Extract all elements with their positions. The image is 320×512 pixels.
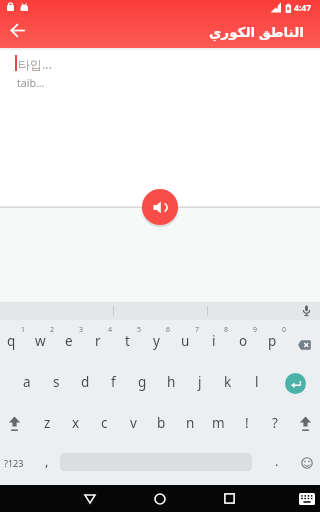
button[interactable]: a [13,369,41,395]
staticText: u [181,332,190,350]
staticText: i [212,332,216,350]
staticText: d [81,373,90,391]
staticText: k [224,373,232,391]
staticText: 1 [21,325,26,335]
staticText: 4:47 [294,2,312,14]
staticText: ?123 [4,457,24,469]
button[interactable]: b [147,410,175,436]
button[interactable]: g [128,369,156,395]
staticText: y [153,332,160,350]
button[interactable]: f [99,369,127,395]
button[interactable]: r [84,328,112,354]
button[interactable]: w [26,328,54,354]
staticText: t [125,332,130,350]
staticText: v [130,414,137,432]
button[interactable]: l [243,369,271,395]
staticText: 타입... [18,56,52,72]
staticText: l [255,373,259,391]
staticText: الناطق الكوري [209,23,304,41]
staticText: m [212,414,225,432]
button[interactable]: ? [261,410,289,436]
staticText: p [268,332,277,350]
staticText: 4 [108,325,113,335]
button[interactable] [217,487,241,510]
staticText: j [198,373,202,391]
button[interactable]: d [71,369,99,395]
button[interactable]: u [171,328,199,354]
staticText: ? [272,414,278,432]
staticText: 7 [195,325,200,335]
staticText: n [186,414,195,432]
button[interactable] [4,17,31,44]
staticText: g [138,373,147,391]
staticText: o [239,332,248,350]
staticText: , [45,452,49,470]
staticText: s [53,373,60,391]
staticText: e [65,332,73,350]
button[interactable]: x [62,410,90,436]
button[interactable]: p [258,328,286,354]
button[interactable]: ?123 [0,453,29,473]
button[interactable]: z [33,410,61,436]
button[interactable]: i [200,328,228,354]
staticText: 9 [253,325,258,335]
staticText: x [72,414,80,432]
staticText: b [157,414,166,432]
staticText: taib... [17,76,45,90]
staticText: 6 [166,325,171,335]
staticText: z [44,414,51,432]
button[interactable] [301,305,312,317]
button[interactable]: e [55,328,83,354]
button[interactable]: k [214,369,242,395]
button[interactable] [301,457,313,469]
staticText: f [111,373,116,391]
staticText: 8 [224,325,229,335]
button[interactable]: q [0,328,25,354]
staticText: r [95,332,101,350]
staticText: a [23,373,31,391]
staticText: 5 [137,325,142,335]
button[interactable]: s [42,369,70,395]
staticText: 3 [79,325,84,335]
button[interactable]: j [186,369,214,395]
button[interactable] [295,487,318,510]
staticText: q [7,332,16,350]
staticText: h [167,373,176,391]
staticText: c [101,414,108,432]
staticText: ! [245,414,249,432]
button[interactable] [291,334,317,355]
staticText: . [275,452,279,470]
staticText: 0 [282,325,287,335]
button[interactable]: v [119,410,147,436]
button[interactable]: n [176,410,204,436]
button[interactable]: . [267,449,287,473]
button[interactable]: o [229,328,257,354]
button[interactable] [7,415,22,432]
button[interactable] [148,487,172,510]
staticText: 2 [50,325,55,335]
button[interactable]: y [142,328,170,354]
button[interactable]: h [157,369,185,395]
button[interactable]: m [204,410,232,436]
button[interactable]: c [90,410,118,436]
button[interactable] [78,487,102,510]
button[interactable]: t [113,328,141,354]
staticText: w [35,332,46,350]
button[interactable] [285,373,306,394]
button[interactable]: , [37,449,57,473]
button[interactable] [142,189,178,225]
button[interactable]: ! [233,410,261,436]
button[interactable] [298,415,313,432]
